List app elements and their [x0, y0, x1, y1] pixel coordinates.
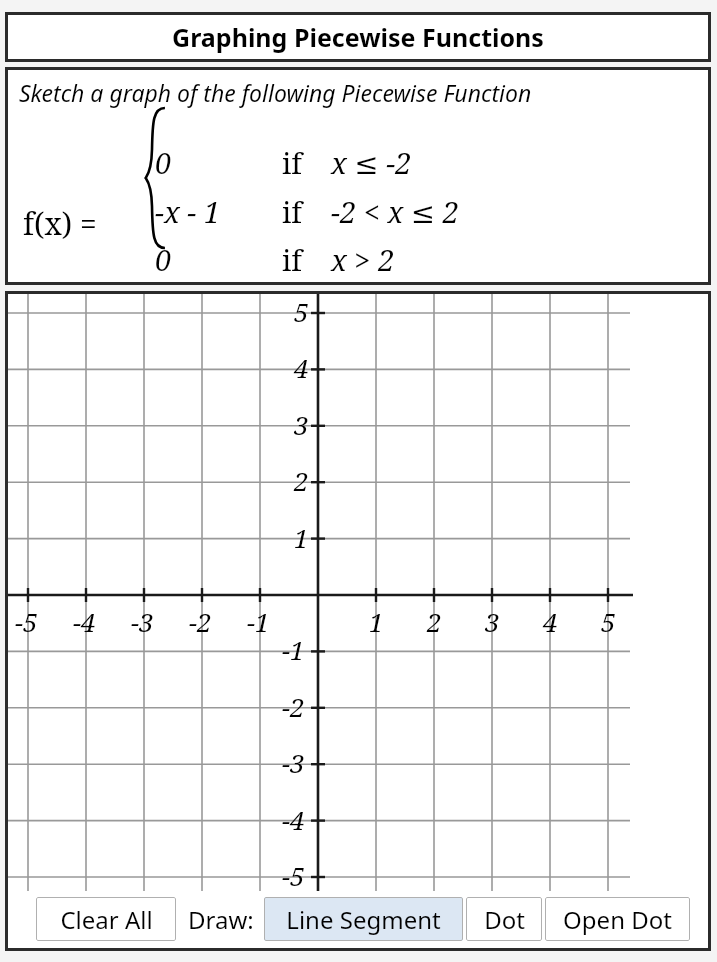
staticText: x ≤ −2 [331, 143, 412, 182]
staticText: −2 < x ≤ 2 [331, 192, 459, 231]
staticText: -5 [282, 858, 305, 893]
staticText: Open Dot [563, 903, 672, 936]
staticText: if [282, 143, 302, 182]
staticText: Graphing Piecewise Functions [172, 20, 544, 54]
staticText: -5 [15, 604, 38, 639]
staticText: -1 [282, 632, 305, 667]
staticText: Line Segment [286, 903, 441, 936]
staticText: 0 [155, 143, 172, 182]
staticText: -4 [73, 604, 96, 639]
staticText: 4 [294, 350, 309, 385]
staticText: -3 [282, 745, 305, 780]
button[interactable]: Open Dot [545, 897, 690, 941]
button[interactable]: Clear All [36, 897, 176, 941]
staticText: f(x) = [23, 203, 97, 244]
staticText: 2 [294, 463, 309, 498]
staticText: Sketch a graph of the following Piecewis… [19, 77, 532, 108]
staticText: x > 2 [331, 240, 395, 279]
staticText: -4 [282, 802, 305, 837]
staticText: 3 [294, 407, 309, 442]
staticText: -1 [247, 604, 270, 639]
button[interactable]: Line Segment [264, 897, 463, 941]
staticText: if [282, 240, 302, 279]
staticText: -2 [282, 689, 305, 724]
staticText: 2 [427, 604, 442, 639]
button[interactable]: Dot [466, 897, 542, 941]
staticText: 1 [294, 520, 309, 555]
staticText: 0 [155, 240, 172, 279]
staticText: Clear All [60, 903, 153, 936]
staticText: 4 [543, 604, 558, 639]
staticText: 5 [601, 604, 616, 639]
staticText: if [282, 192, 302, 231]
staticText: -2 [189, 604, 212, 639]
staticText: 5 [294, 294, 309, 329]
staticText: Dot [484, 903, 525, 936]
staticText: −x − 1 [155, 192, 221, 231]
staticText: -3 [131, 604, 154, 639]
staticText: 3 [485, 604, 500, 639]
staticText: 1 [369, 604, 384, 639]
staticText: Draw: [188, 903, 254, 936]
